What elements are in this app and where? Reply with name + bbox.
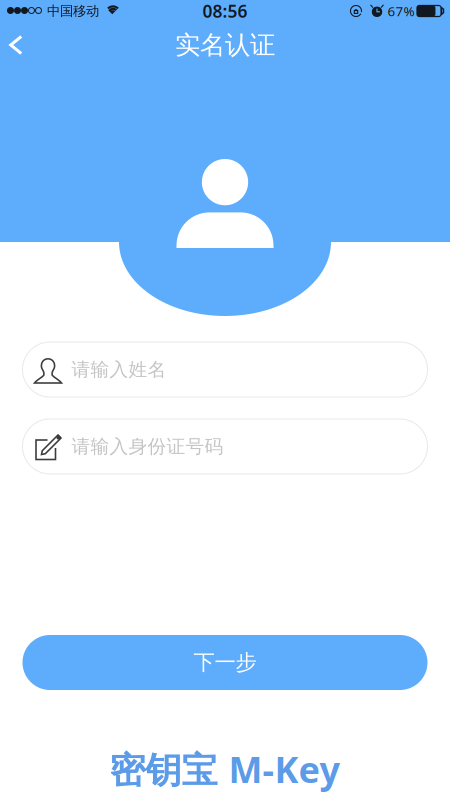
button[interactable]: 请输入姓名 [22, 342, 427, 397]
staticText: 请输入姓名 [71, 358, 166, 381]
staticText: 下一步 [193, 649, 256, 676]
staticText: 密钥宝 M-Key [109, 745, 340, 793]
staticText: 08:56 [202, 0, 247, 22]
staticText: 请输入身份证号码 [71, 435, 223, 458]
button[interactable]: 下一步 [22, 635, 427, 690]
staticText: 67% [387, 2, 414, 20]
button[interactable]: Back [0, 23, 44, 67]
staticText: 实名认证 [175, 29, 275, 60]
staticText: 中国移动 [47, 3, 99, 19]
button[interactable]: 请输入身份证号码 [22, 419, 427, 474]
